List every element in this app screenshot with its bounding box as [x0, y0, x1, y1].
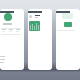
button[interactable]: Profile avatar: [4, 13, 12, 21]
button[interactable]: [29, 21, 40, 31]
button[interactable]: [64, 22, 72, 27]
